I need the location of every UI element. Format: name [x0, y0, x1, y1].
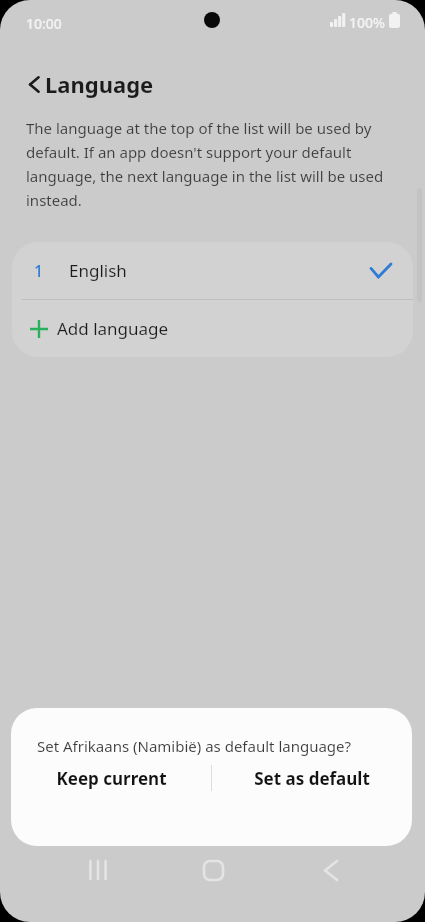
staticText: English	[69, 259, 127, 282]
staticText: 100%	[349, 13, 385, 32]
staticText: 10:00	[26, 14, 62, 33]
staticText: Set Afrikaans (Namibië) as default langu…	[37, 736, 352, 756]
button[interactable]: Recents	[76, 848, 120, 892]
button[interactable]: Back	[18, 68, 50, 100]
staticText: Language	[45, 69, 154, 99]
staticText: 1	[34, 260, 44, 282]
staticText: Keep current	[56, 767, 167, 790]
button[interactable]: Home	[191, 848, 235, 892]
button[interactable]: Set as default	[212, 752, 412, 804]
button[interactable]: Keep current	[11, 752, 211, 804]
staticText: The language at the top of the list will…	[26, 118, 391, 210]
staticText: Set as default	[254, 767, 370, 790]
staticText: Add language	[57, 317, 169, 340]
button[interactable]: Add language	[12, 300, 413, 357]
button[interactable]: Back	[309, 848, 353, 892]
button[interactable]: 1	[12, 242, 413, 299]
